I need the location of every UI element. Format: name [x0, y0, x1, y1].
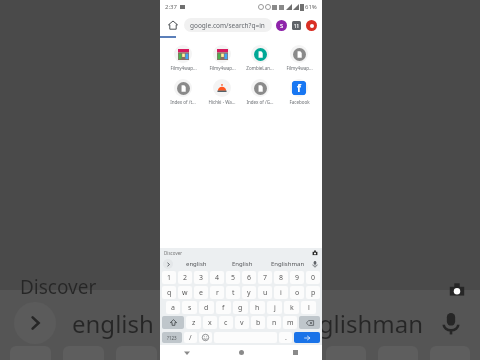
button[interactable]: Index of /t... [164, 77, 202, 107]
button[interactable]: Index of /G... [241, 77, 279, 107]
staticText: g [238, 303, 243, 313]
button[interactable]: Hichki - Wa... [203, 77, 241, 107]
button[interactable]: Voice input [311, 260, 319, 268]
button[interactable]: Emoji [199, 332, 212, 343]
button[interactable]: Back [160, 345, 214, 360]
button[interactable]: y [242, 286, 256, 299]
staticText: . [285, 333, 287, 343]
staticText: ZombieLan... [246, 65, 274, 71]
button[interactable]: 6 [242, 271, 256, 284]
button[interactable]: b [251, 316, 265, 329]
staticText: 11 [294, 23, 300, 29]
staticText: Index of /t... [170, 99, 196, 105]
button[interactable]: . [279, 332, 292, 343]
button[interactable]: google.com/search?q=in [184, 18, 272, 32]
button[interactable]: Home [214, 345, 268, 360]
button[interactable]: english [173, 257, 219, 270]
staticText: v [240, 318, 244, 328]
button[interactable]: Search [294, 332, 320, 343]
button[interactable]: Key [299, 316, 320, 329]
button[interactable]: e [194, 286, 208, 299]
staticText: e [199, 288, 203, 298]
staticText: c [224, 318, 228, 328]
button[interactable]: h [250, 301, 265, 314]
staticText: u [263, 288, 268, 298]
staticText: q [167, 288, 172, 298]
staticText: o [295, 288, 300, 298]
staticText: x [208, 318, 212, 328]
staticText: S [280, 22, 284, 30]
button[interactable]: Tabs [291, 20, 302, 31]
staticText: 61% [305, 3, 317, 11]
button[interactable]: Home [165, 17, 181, 33]
staticText: 6 [247, 273, 252, 283]
button[interactable]: i [274, 286, 288, 299]
staticText: m [287, 318, 294, 328]
button[interactable]: m [283, 316, 297, 329]
button[interactable]: 3 [194, 271, 208, 284]
button[interactable]: Filmy4wap... [203, 43, 241, 73]
button[interactable]: k [284, 301, 299, 314]
button[interactable]: s [182, 301, 197, 314]
button[interactable]: z [186, 316, 201, 329]
button[interactable]: nglishman [304, 307, 424, 340]
button[interactable]: v [235, 316, 249, 329]
button[interactable]: English [219, 257, 265, 270]
button[interactable]: Expand suggestions [14, 302, 56, 344]
button[interactable]: g [233, 301, 248, 314]
button[interactable]: Englishman [265, 257, 311, 270]
button[interactable]: Recents [268, 345, 322, 360]
button[interactable]: Key [162, 316, 184, 329]
button[interactable]: u [258, 286, 272, 299]
button[interactable]: Profile [276, 20, 287, 31]
button[interactable]: Filmy4wap... [280, 43, 318, 73]
staticText: s [188, 303, 192, 313]
button[interactable]: q [162, 286, 176, 299]
staticText: n [272, 318, 277, 328]
button[interactable]: o [290, 286, 304, 299]
button[interactable]: f [280, 77, 318, 107]
button[interactable]: Menu [306, 20, 317, 31]
button[interactable]: 7 [258, 271, 272, 284]
staticText: b [256, 318, 261, 328]
button[interactable]: j [267, 301, 282, 314]
button[interactable]: ZombieLan... [241, 43, 279, 73]
button[interactable]: a [166, 301, 180, 314]
button[interactable]: Key [162, 332, 182, 343]
button[interactable]: c [219, 316, 233, 329]
staticText: w [182, 288, 188, 298]
button[interactable]: f [216, 301, 231, 314]
button[interactable]: n [267, 316, 281, 329]
button[interactable]: 2 [178, 271, 192, 284]
staticText: r [216, 288, 219, 298]
button[interactable]: Filmy4wap... [164, 43, 202, 73]
button[interactable]: english [72, 307, 154, 340]
button[interactable]: 9 [290, 271, 304, 284]
button[interactable]: x [203, 316, 217, 329]
button[interactable]: p [306, 286, 320, 299]
staticText: 8 [279, 273, 284, 283]
button[interactable]: l [301, 301, 316, 314]
staticText: f [222, 303, 225, 313]
button[interactable]: w [178, 286, 192, 299]
button[interactable]: Voice input [438, 310, 464, 336]
button[interactable]: 1 [162, 271, 176, 284]
button[interactable]: 0 [306, 271, 320, 284]
staticText: Index of /G... [246, 99, 274, 105]
button[interactable]: d [199, 301, 214, 314]
staticText: 5 [231, 273, 236, 283]
staticText: y [247, 288, 251, 298]
button[interactable]: 5 [226, 271, 240, 284]
staticText: Filmy4wap... [209, 65, 236, 71]
staticText: 3 [199, 273, 204, 283]
button[interactable]: 4 [210, 271, 224, 284]
staticText: Discover [164, 250, 183, 256]
staticText: Filmy4wap... [170, 65, 197, 71]
staticText: / [189, 333, 192, 343]
button[interactable]: r [210, 286, 224, 299]
button[interactable]: More suggestions [163, 259, 173, 269]
button[interactable]: / [184, 332, 197, 343]
button[interactable]: 8 [274, 271, 288, 284]
button[interactable]: t [226, 286, 240, 299]
